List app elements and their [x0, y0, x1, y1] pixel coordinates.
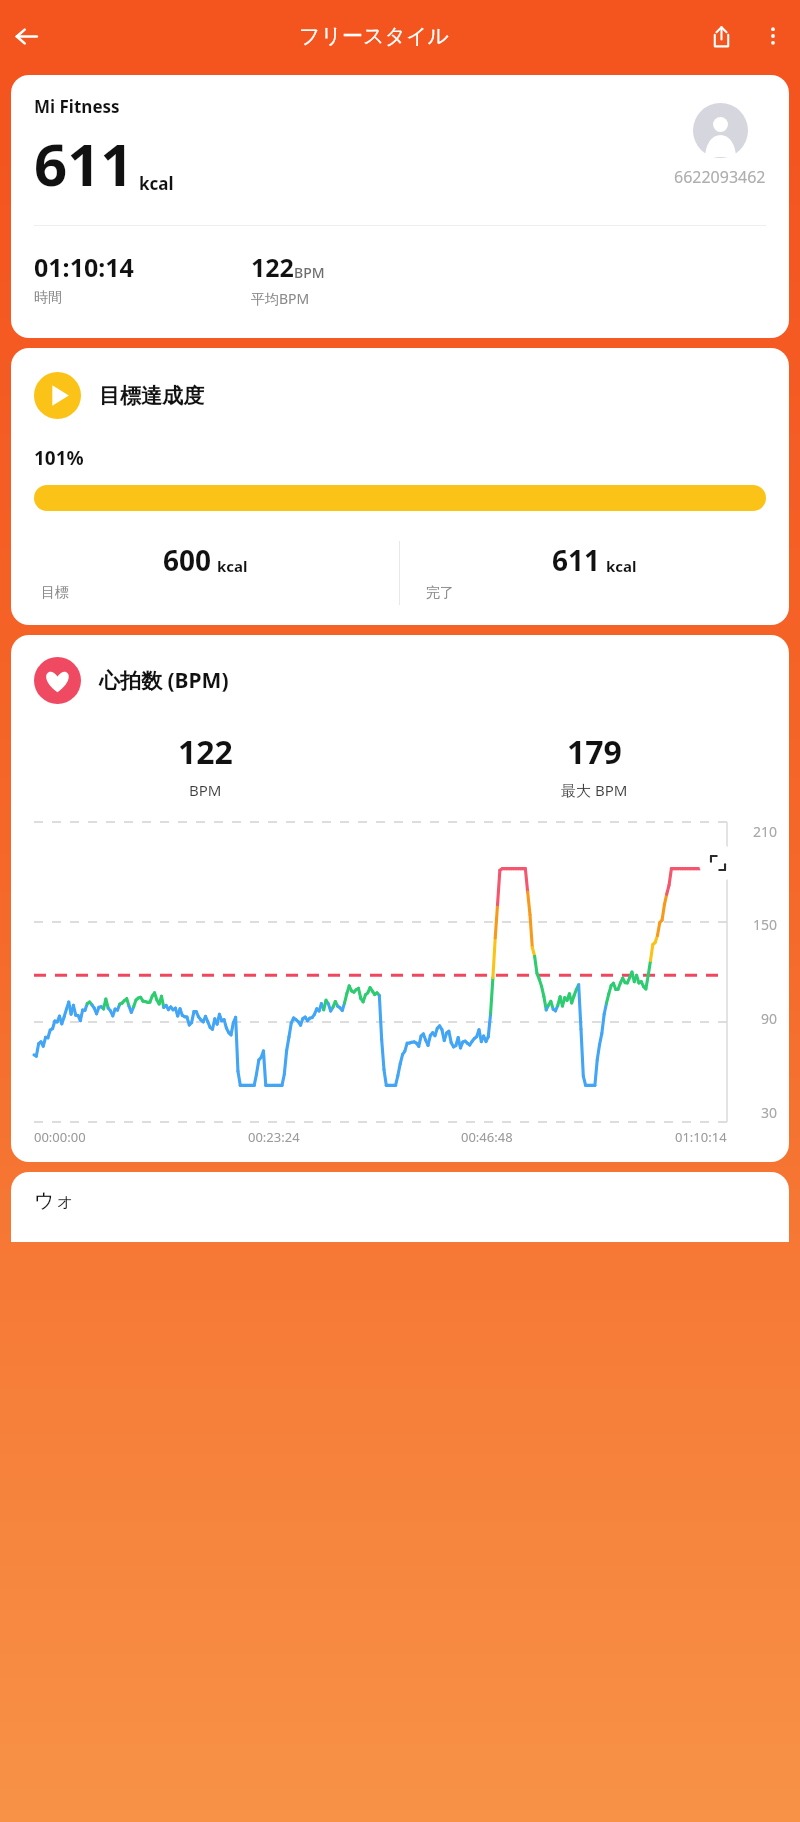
staticText: 00:23:24	[248, 1128, 300, 1146]
staticText: 150	[752, 915, 777, 934]
staticText: kcal	[217, 556, 248, 576]
button[interactable]: 心拍数 (BPM)	[34, 657, 229, 704]
staticText: 00:00:00	[34, 1128, 86, 1146]
staticText: 目標達成度	[99, 383, 204, 409]
staticText: Mi Fitness	[34, 95, 120, 118]
staticText: 611	[34, 124, 134, 203]
staticText: 時間	[34, 289, 62, 307]
staticText: BPM	[294, 263, 325, 282]
button[interactable]: 目標達成度	[34, 372, 204, 419]
staticText: 平均BPM	[251, 289, 310, 308]
staticText: 101%	[34, 445, 84, 471]
staticText: 01:10:14	[675, 1128, 727, 1146]
staticText: 目標	[41, 584, 69, 602]
staticText: 01:10:14	[34, 250, 134, 284]
staticText: フリースタイル	[299, 23, 449, 49]
button[interactable]: Back	[0, 10, 52, 62]
staticText: 611	[552, 541, 601, 579]
staticText: 210	[752, 822, 777, 841]
staticText: 90	[760, 1009, 777, 1028]
staticText: 心拍数 (BPM)	[99, 666, 229, 695]
staticText: kcal	[139, 172, 174, 195]
button[interactable]: More options	[746, 9, 800, 63]
button[interactable]: Fullscreen	[699, 844, 737, 882]
staticText: ウォ	[34, 1188, 75, 1213]
staticText: 00:46:48	[461, 1128, 513, 1146]
staticText: BPM	[189, 780, 222, 800]
staticText: 完了	[426, 584, 454, 602]
staticText: kcal	[606, 556, 637, 576]
staticText: 122	[251, 250, 294, 284]
staticText: 179	[567, 730, 622, 774]
staticText: 600	[163, 541, 212, 579]
staticText: 122	[178, 730, 233, 774]
button[interactable]: Share	[696, 11, 746, 61]
staticText: 30	[760, 1103, 777, 1122]
staticText: 6622093462	[674, 166, 766, 188]
staticText: 最大 BPM	[561, 780, 628, 800]
